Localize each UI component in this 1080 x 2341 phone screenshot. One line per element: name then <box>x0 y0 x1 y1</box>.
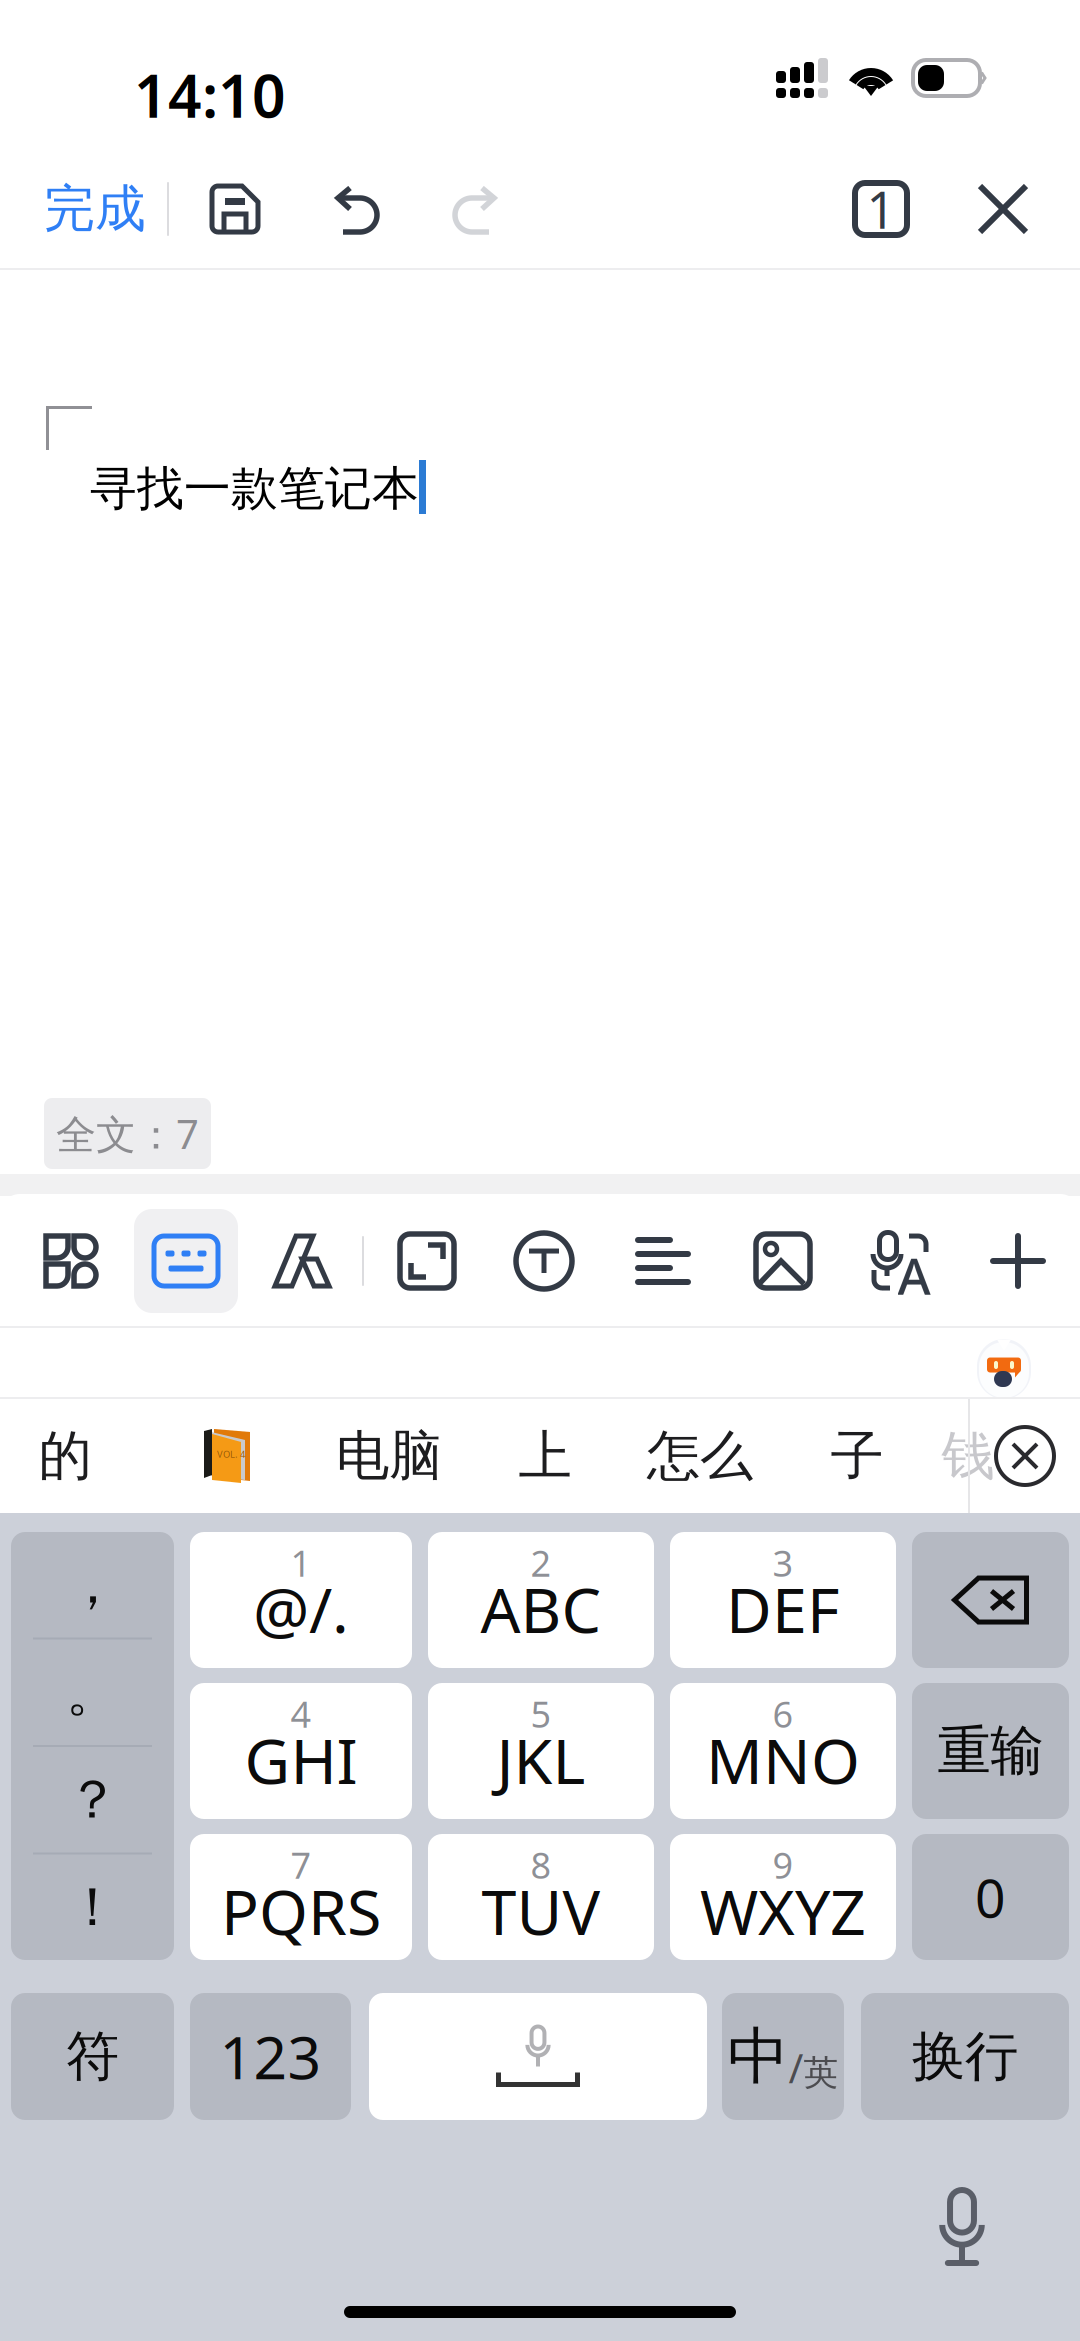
staticText: 符 <box>66 2024 119 2089</box>
button[interactable]: Close <box>948 150 1058 268</box>
button[interactable]: Text style <box>492 1209 596 1313</box>
staticText: DEF <box>726 1567 840 1650</box>
staticText: ？ <box>66 1767 119 1832</box>
button[interactable]: Fullscreen <box>375 1209 479 1313</box>
staticText: @/. <box>253 1567 349 1650</box>
button[interactable]: Align <box>611 1209 715 1313</box>
staticText: 上 <box>518 1423 571 1489</box>
staticText: / <box>788 2041 803 2094</box>
button[interactable]: 4 <box>190 1683 412 1819</box>
staticText: 7 <box>290 1841 311 1889</box>
button[interactable]: 1 <box>190 1532 412 1668</box>
button[interactable]: Assistant <box>977 1338 1031 1400</box>
staticText: 。 <box>66 1659 119 1725</box>
staticText: 钱 <box>941 1423 994 1489</box>
button[interactable]: Templates <box>19 1209 123 1313</box>
staticText: 全文：7 <box>56 1107 199 1160</box>
staticText: GHI <box>244 1718 357 1801</box>
staticText: 9 <box>772 1841 793 1889</box>
button[interactable]: 符 <box>11 1993 174 2120</box>
button[interactable]: 5 <box>428 1683 654 1819</box>
button[interactable]: 0 <box>912 1834 1069 1960</box>
staticText: JKL <box>496 1718 585 1801</box>
staticText: 2 <box>530 1539 551 1587</box>
button[interactable]: Insert image <box>731 1209 835 1313</box>
button[interactable]: 123 <box>190 1993 351 2120</box>
button[interactable]: Pages <box>826 150 936 268</box>
staticText: 英 <box>803 2052 838 2094</box>
button[interactable]: Voice to text <box>848 1209 952 1313</box>
staticText: 123 <box>219 2017 321 2095</box>
staticText: 的 <box>38 1423 91 1489</box>
button[interactable]: 2 <box>428 1532 654 1668</box>
staticText: WXYZ <box>700 1869 866 1952</box>
button[interactable]: Switch language <box>722 1993 844 2120</box>
staticText: 5 <box>530 1690 551 1738</box>
button[interactable]: Save <box>180 150 290 268</box>
staticText: 1 <box>290 1539 311 1587</box>
staticText: ， <box>66 1552 119 1617</box>
staticText: 换行 <box>912 2024 1018 2089</box>
staticText: 重输 <box>937 1718 1043 1784</box>
button[interactable]: More <box>966 1209 1070 1313</box>
button[interactable]: 子 <box>792 1399 922 1513</box>
staticText: 完成 <box>44 178 146 240</box>
button[interactable]: Redo <box>421 150 531 268</box>
button[interactable]: Keyboard <box>134 1209 238 1313</box>
button[interactable]: 重输 <box>912 1683 1069 1819</box>
staticText: 1 <box>866 175 895 243</box>
button[interactable]: 换行 <box>861 1993 1069 2120</box>
staticText: 子 <box>830 1423 883 1489</box>
button[interactable]: 电脑 <box>309 1399 469 1513</box>
button[interactable]: Undo <box>301 150 411 268</box>
button[interactable]: 7 <box>190 1834 412 1960</box>
button[interactable]: 6 <box>670 1683 896 1819</box>
staticText: TUV <box>481 1869 600 1952</box>
staticText: 4 <box>290 1690 311 1738</box>
staticText: 14:10 <box>134 56 286 134</box>
staticText: 6 <box>772 1690 793 1738</box>
staticText: A <box>897 1241 930 1309</box>
button[interactable]: 9 <box>670 1834 896 1960</box>
button[interactable]: Space <box>369 1993 707 2120</box>
staticText: VOL. 4 <box>217 1448 245 1460</box>
staticText: 0 <box>975 1862 1006 1932</box>
button[interactable]: Dictate <box>916 2178 1008 2278</box>
button[interactable]: 上 <box>480 1399 610 1513</box>
button[interactable]: Clear input <box>970 1399 1080 1513</box>
staticText: MNO <box>706 1718 860 1801</box>
button[interactable]: 的 <box>0 1399 130 1513</box>
staticText: 寻找一款笔记本 <box>90 460 419 517</box>
staticText: PQRS <box>221 1869 381 1952</box>
staticText: 怎么 <box>647 1423 753 1489</box>
button[interactable]: Delete <box>912 1532 1069 1668</box>
staticText: 电脑 <box>336 1423 442 1489</box>
button[interactable]: 8 <box>428 1834 654 1960</box>
button[interactable]: 怎么 <box>620 1399 780 1513</box>
staticText: 8 <box>530 1841 551 1889</box>
staticText: 中 <box>727 2019 788 2094</box>
staticText: ABC <box>480 1567 601 1650</box>
staticText: 3 <box>772 1539 793 1587</box>
button[interactable]: Handwriting <box>250 1209 354 1313</box>
button[interactable]: 完成 <box>20 150 170 268</box>
staticText: ！ <box>66 1874 119 1940</box>
button[interactable]: 3 <box>670 1532 896 1668</box>
button[interactable]: Book emoji <box>162 1399 292 1513</box>
